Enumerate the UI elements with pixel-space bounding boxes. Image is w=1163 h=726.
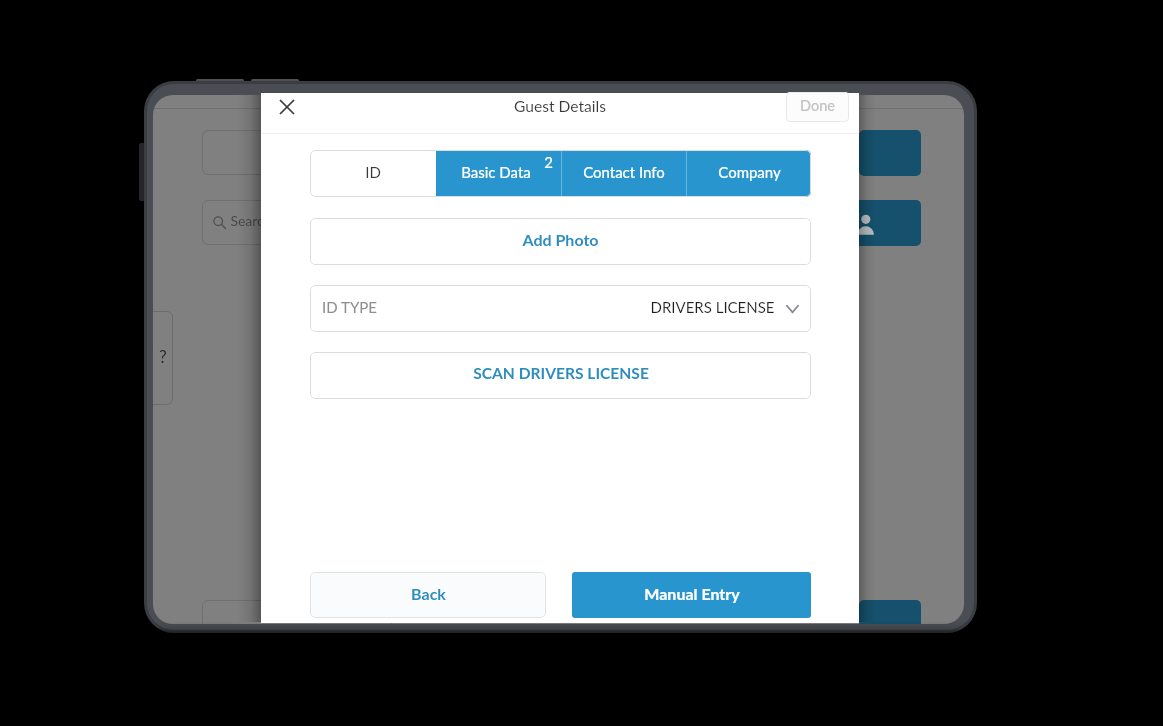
button[interactable]: Close (269, 89, 305, 125)
staticText: Search (230, 212, 272, 229)
staticText: Company (718, 163, 781, 181)
button[interactable]: Company (687, 150, 811, 197)
staticText: 2 (544, 153, 553, 171)
button[interactable]: More actions (859, 600, 921, 624)
staticText: Done (800, 97, 835, 114)
button[interactable]: Contact Info (562, 150, 686, 197)
button[interactable]: ID (310, 150, 436, 197)
staticText: Add Photo (522, 230, 599, 249)
staticText: Back (411, 584, 446, 603)
button[interactable]: Basic Data (436, 150, 561, 197)
staticText: ? (159, 346, 167, 367)
button[interactable]: Back (310, 572, 546, 618)
button[interactable]: ID TYPE (310, 285, 811, 332)
button[interactable]: Help (153, 311, 173, 405)
staticText: DRIVERS LICENSE (650, 298, 775, 316)
button[interactable]: Manual Entry (572, 572, 811, 618)
button[interactable]: Guests (793, 200, 921, 246)
staticText: ID TYPE (322, 298, 377, 316)
staticText: Guest Details (514, 97, 606, 116)
staticText: Manual Entry (644, 584, 740, 603)
button[interactable]: Done (786, 92, 849, 122)
button[interactable]: Search (202, 200, 392, 245)
staticText: Basic Data (461, 163, 531, 181)
staticText: SCAN DRIVERS LICENSE (473, 364, 649, 383)
button[interactable]: SCAN DRIVERS LICENSE (310, 352, 811, 399)
staticText: Contact Info (583, 163, 665, 181)
button[interactable]: New reservation (859, 130, 921, 176)
staticText: ID (365, 163, 381, 181)
button[interactable]: Add Photo (310, 218, 811, 265)
